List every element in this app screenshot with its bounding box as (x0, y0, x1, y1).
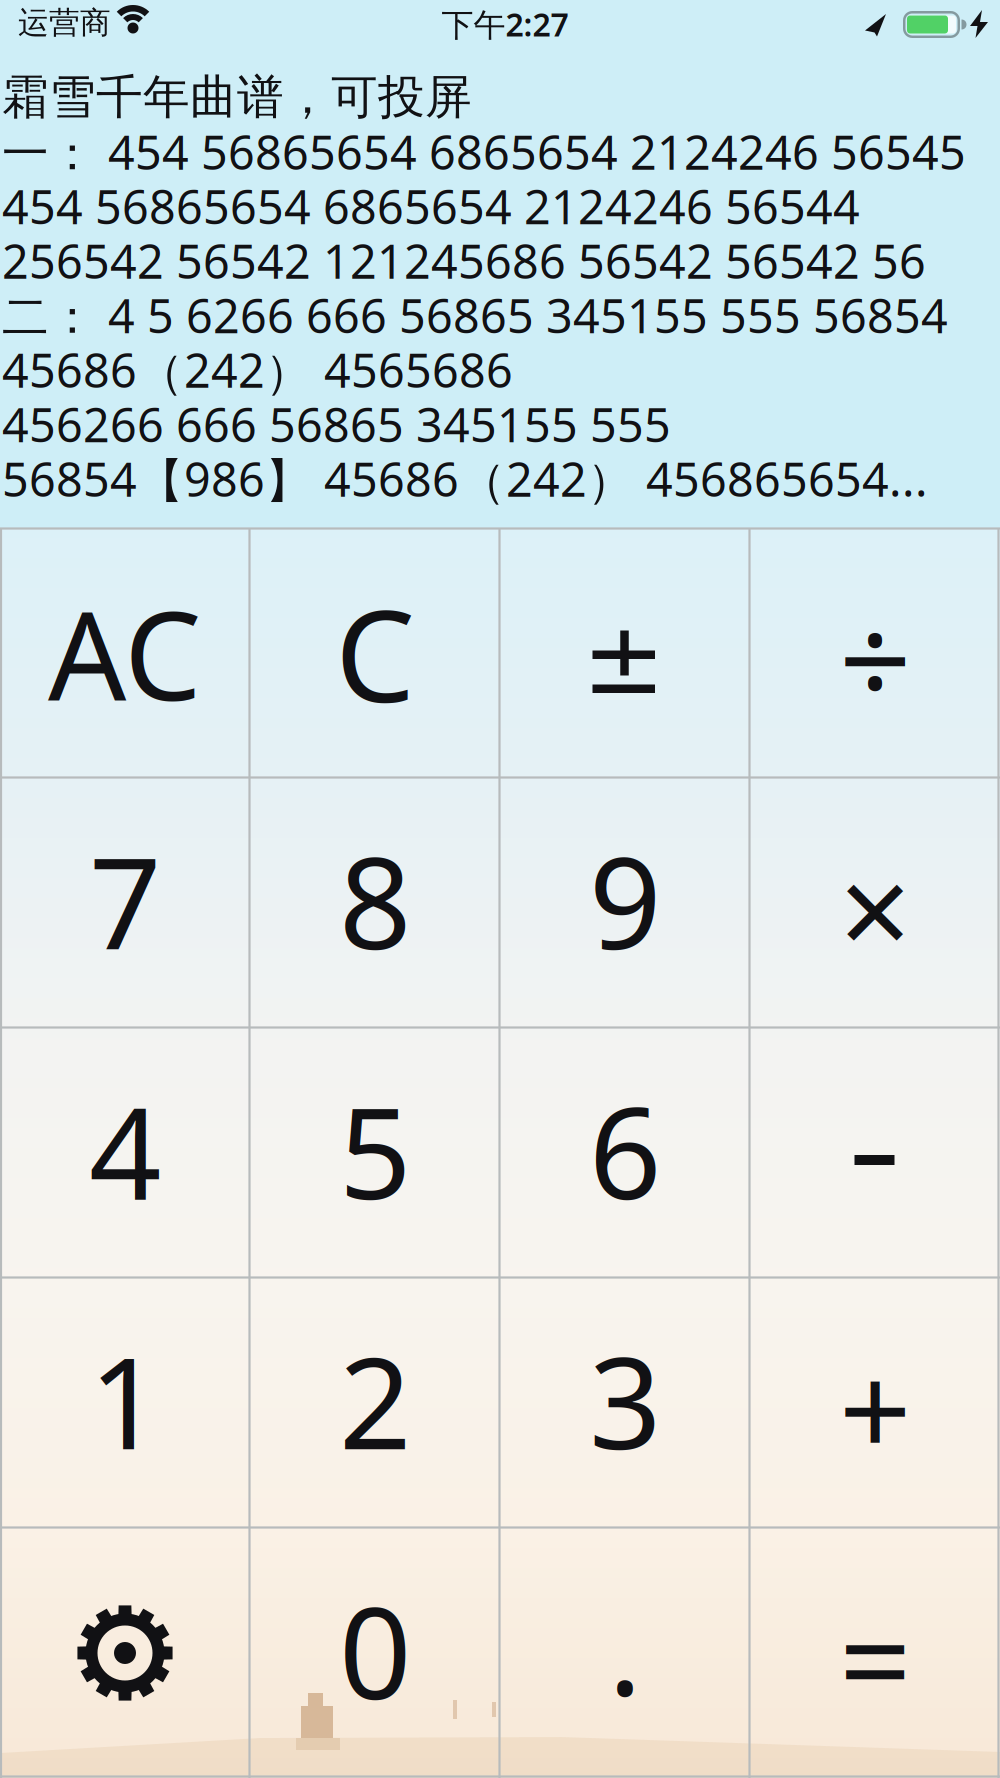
staticText: + (839, 1323, 911, 1492)
button[interactable]: 8 (250, 778, 500, 1028)
staticText: 二： 4 5 6266 666 56865 345155 555 56854 (2, 284, 948, 346)
button[interactable]: = (750, 1528, 1000, 1778)
staticText: = (839, 1573, 911, 1741)
button[interactable]: . (500, 1528, 750, 1778)
button[interactable]: 3 (500, 1278, 750, 1528)
staticText: 256542 56542 121245686 56542 56542 56 (2, 230, 926, 292)
staticText: 7 (89, 816, 161, 984)
staticText: 45686（242） 4565686 (2, 339, 513, 401)
button[interactable]: 6 (500, 1028, 750, 1278)
staticText: 4 (89, 1066, 161, 1234)
button[interactable]: C (250, 528, 500, 778)
button[interactable]: × (750, 778, 1000, 1028)
staticText: 56854【986】 45686（242） 456865654... (2, 448, 928, 510)
staticText: 1 (89, 1316, 161, 1484)
button[interactable]: 5 (250, 1028, 500, 1278)
staticText: 运营商 (18, 4, 111, 42)
staticText: 下午2:27 (441, 3, 568, 45)
staticText: ÷ (839, 573, 911, 741)
staticText: 霜雪千年曲谱，可投屏 (2, 69, 472, 126)
staticText: . (608, 1562, 642, 1730)
staticText: 2 (339, 1316, 411, 1484)
staticText: C (335, 569, 415, 737)
staticText: × (839, 824, 911, 992)
button[interactable]: 1 (0, 1278, 250, 1528)
button[interactable] (0, 1528, 250, 1778)
staticText: 9 (589, 816, 661, 984)
staticText: 6 (589, 1066, 661, 1234)
staticText: 8 (339, 816, 411, 984)
button[interactable]: 9 (500, 778, 750, 1028)
staticText: 一： 454 56865654 6865654 2124246 56545 (2, 121, 966, 183)
button[interactable]: 4 (0, 1028, 250, 1278)
staticText: AC (48, 572, 202, 734)
button[interactable]: + (750, 1278, 1000, 1528)
staticText: 3 (589, 1316, 661, 1484)
button[interactable]: ÷ (750, 528, 1000, 778)
staticText: 5 (339, 1066, 411, 1234)
button[interactable] (500, 528, 750, 778)
button[interactable] (750, 1028, 1000, 1278)
button[interactable]: 2 (250, 1278, 500, 1528)
button[interactable]: AC (0, 528, 250, 778)
staticText: 454 56865654 6865654 2124246 56544 (2, 175, 860, 237)
button[interactable]: 7 (0, 778, 250, 1028)
staticText: 0 (339, 1566, 411, 1734)
button[interactable]: 0 (250, 1528, 500, 1778)
staticText: 456266 666 56865 345155 555 (2, 393, 671, 455)
